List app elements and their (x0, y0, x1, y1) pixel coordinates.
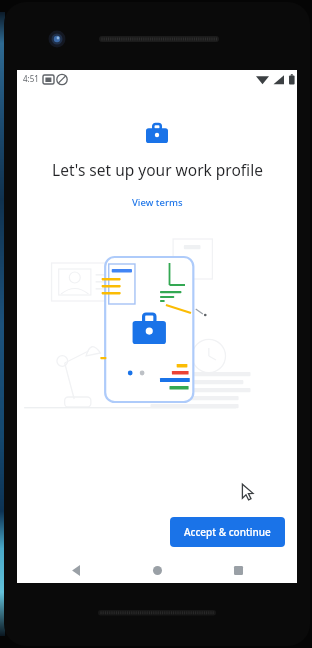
staticText: 4:51 (23, 73, 39, 84)
button[interactable]: Recent apps (216, 557, 260, 583)
staticText: Accept & continue (184, 525, 271, 539)
button[interactable]: View terms (126, 194, 189, 211)
button[interactable]: Accept & continue (170, 517, 285, 547)
staticText: View terms (132, 196, 183, 209)
staticText: Let's set up your work profile (52, 159, 263, 180)
button[interactable]: Back (54, 557, 98, 583)
button[interactable]: Home (135, 557, 179, 583)
